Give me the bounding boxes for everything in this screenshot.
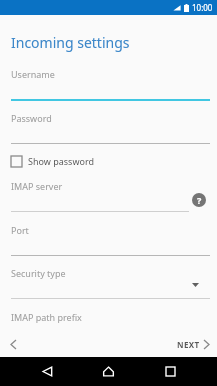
button[interactable]: Password xyxy=(0,112,217,144)
staticText: NEXT xyxy=(177,339,200,350)
staticText: Username xyxy=(11,68,55,80)
button[interactable]: IMAP server xyxy=(0,180,217,212)
button[interactable]: Help xyxy=(190,191,208,209)
button[interactable]: Back xyxy=(33,357,62,386)
button[interactable]: Home xyxy=(94,357,123,386)
staticText: 10:00 xyxy=(192,2,213,13)
button[interactable]: Show password xyxy=(0,153,217,169)
staticText: ? xyxy=(197,194,202,206)
staticText: IMAP server xyxy=(11,180,63,192)
staticText: Incoming settings xyxy=(11,33,130,52)
staticText: Security type xyxy=(11,267,66,279)
button[interactable]: Recent apps xyxy=(156,357,185,386)
staticText: IMAP path prefix xyxy=(11,311,82,323)
button[interactable]: Select security type xyxy=(189,279,201,291)
button[interactable]: Username xyxy=(0,68,217,101)
button[interactable]: Security type xyxy=(0,267,217,299)
staticText: Port xyxy=(11,224,29,236)
staticText: Show password xyxy=(28,155,94,167)
button[interactable]: Previous xyxy=(0,331,26,357)
button[interactable]: Port xyxy=(0,224,217,256)
button[interactable]: NEXT xyxy=(169,335,217,354)
staticText: Password xyxy=(11,112,52,124)
